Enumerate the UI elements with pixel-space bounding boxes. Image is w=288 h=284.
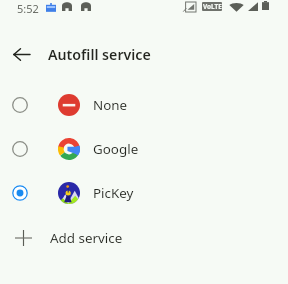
button[interactable]: None bbox=[0, 83, 288, 127]
staticText: Google bbox=[93, 140, 139, 158]
staticText: None bbox=[93, 96, 128, 114]
staticText: Add service bbox=[50, 229, 123, 247]
staticText: PicKey bbox=[93, 184, 134, 202]
button[interactable]: PicKey bbox=[0, 171, 288, 215]
button[interactable]: Google bbox=[0, 127, 288, 171]
staticText: Autofill service bbox=[48, 45, 151, 64]
staticText: VoLTE bbox=[203, 2, 222, 11]
button[interactable]: Back bbox=[8, 41, 34, 67]
staticText: 5:52 bbox=[17, 1, 39, 16]
button[interactable]: Add service bbox=[0, 216, 288, 260]
